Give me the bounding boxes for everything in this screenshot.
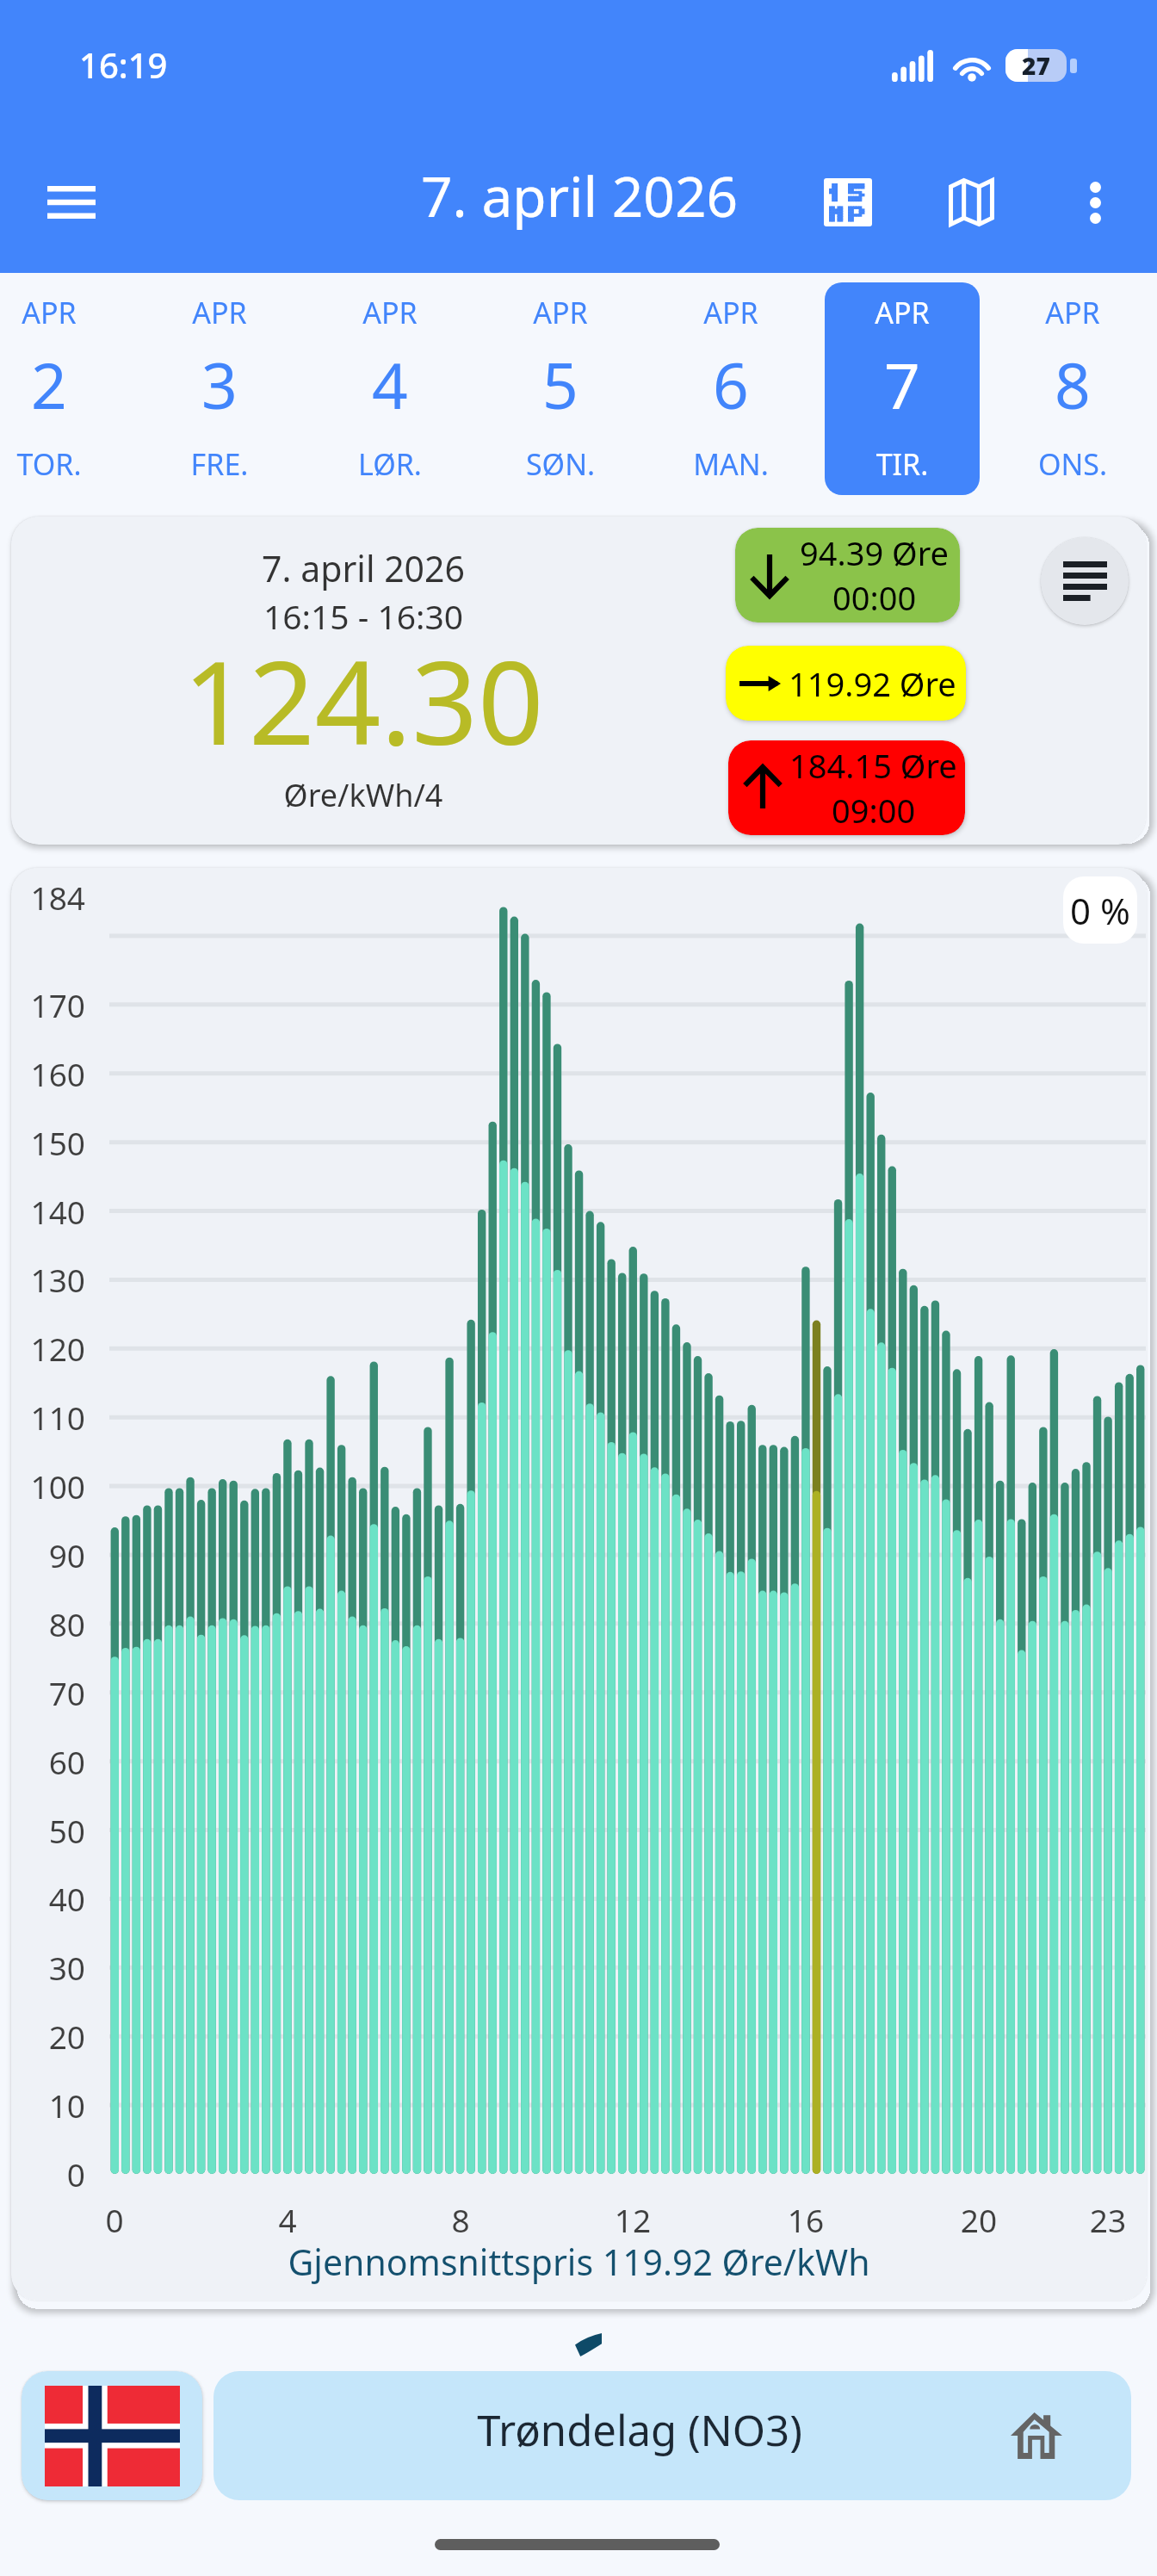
button[interactable]: 119.92 Øre (726, 646, 966, 721)
staticText: ONS. (995, 444, 1150, 484)
button[interactable]: APR (653, 282, 808, 495)
staticText: 120 (11, 1327, 85, 1370)
staticText: 94.39 Øre (800, 530, 950, 575)
staticText: 50 (11, 1809, 85, 1852)
staticText: 16 (754, 2198, 857, 2241)
staticText: 184.15 Øre (789, 743, 957, 788)
staticText: APR (0, 293, 127, 332)
staticText: APR (653, 293, 808, 332)
staticText: 130 (11, 1258, 85, 1301)
button[interactable]: APR (825, 282, 980, 495)
button[interactable]: 7. april 2026 (11, 517, 1146, 845)
staticText: 119.92 Øre (789, 661, 956, 706)
staticText: 160 (11, 1052, 85, 1095)
staticText: 4 (312, 342, 467, 427)
staticText: 70 (11, 1671, 85, 1714)
staticText: 140 (11, 1190, 85, 1233)
staticText: 27 (1022, 49, 1050, 82)
staticText: APR (995, 293, 1150, 332)
staticText: 7. april 2026 (421, 158, 739, 233)
button[interactable]: 15 minute prices (801, 155, 895, 250)
staticText: Øre/kWh/4 (105, 774, 622, 816)
staticText: 5 (483, 342, 638, 427)
button[interactable]: 184 (11, 868, 1147, 2300)
staticText: 20 (927, 2198, 1030, 2241)
button[interactable]: Open navigation menu (24, 155, 119, 250)
staticText: 8 (409, 2198, 512, 2241)
button[interactable]: More options (1048, 155, 1142, 250)
staticText: 60 (11, 1740, 85, 1783)
staticText: 150 (11, 1121, 85, 1164)
staticText: 0 % (1070, 886, 1130, 935)
staticText: 12 (581, 2198, 684, 2241)
staticText: APR (142, 293, 297, 332)
button[interactable]: 94.39 Øre (735, 528, 960, 622)
button[interactable]: 184.15 Øre (728, 740, 965, 835)
button[interactable]: Trøndelag (NO3) (213, 2371, 1131, 2500)
staticText: 80 (11, 1602, 85, 1645)
staticText: 90 (11, 1533, 85, 1576)
staticText: 0 (63, 2198, 166, 2241)
staticText: 23 (1056, 2198, 1147, 2241)
staticText: 110 (11, 1396, 85, 1439)
staticText: 2 (0, 342, 127, 427)
staticText: APR (825, 293, 980, 332)
staticText: LØR. (312, 444, 467, 484)
staticText: APR (483, 293, 638, 332)
staticText: APR (312, 293, 467, 332)
staticText: 8 (995, 342, 1150, 427)
staticText: TOR. (0, 444, 127, 484)
staticText: Gjennomsnittspris 119.92 Øre/kWh (11, 2238, 1147, 2286)
staticText: 100 (11, 1464, 85, 1508)
button[interactable]: APR (483, 282, 638, 495)
staticText: Trøndelag (NO3) (213, 2401, 1098, 2459)
button[interactable]: APR (0, 282, 127, 495)
staticText: FRE. (142, 444, 297, 484)
staticText: 40 (11, 1877, 85, 1920)
staticText: TIR. (825, 444, 980, 484)
staticText: 30 (11, 1946, 85, 1989)
staticText: 7. april 2026 (105, 544, 622, 592)
staticText: 7 (825, 342, 980, 427)
staticText: 09:00 (832, 788, 916, 833)
button[interactable]: Map (924, 155, 1018, 250)
button[interactable]: Select country (22, 2371, 202, 2500)
staticText: 170 (11, 983, 85, 1026)
button[interactable]: Show price list (1041, 537, 1129, 625)
staticText: 4 (236, 2198, 339, 2241)
staticText: 16:19 (79, 41, 168, 88)
staticText: 00:00 (832, 575, 917, 620)
staticText: SØN. (483, 444, 638, 484)
staticText: 6 (653, 342, 808, 427)
staticText: 0 (11, 2152, 85, 2195)
staticText: 20 (11, 2015, 85, 2058)
staticText: MAN. (653, 444, 808, 484)
button[interactable]: 0 % (1063, 876, 1137, 944)
staticText: 3 (142, 342, 297, 427)
button[interactable]: Home zone (1002, 2407, 1071, 2464)
button[interactable]: APR (312, 282, 467, 495)
staticText: 16:15 - 16:30 (105, 593, 622, 639)
button[interactable]: APR (142, 282, 297, 495)
staticText: 184 (11, 876, 85, 919)
staticText: 124.30 (105, 622, 622, 779)
staticText: 10 (11, 2084, 85, 2127)
button[interactable]: APR (995, 282, 1150, 495)
